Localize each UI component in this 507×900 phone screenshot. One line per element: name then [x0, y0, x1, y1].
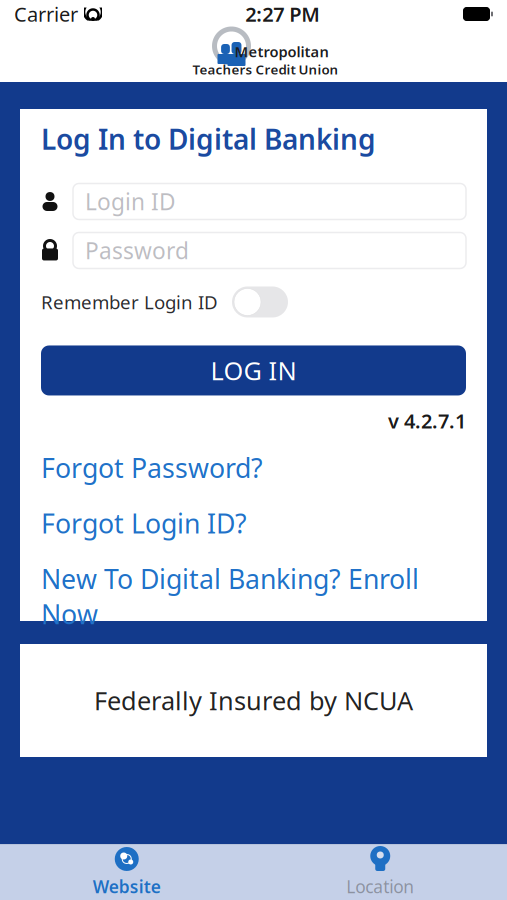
staticText: Forgot Password?	[41, 450, 263, 485]
staticText: Password	[85, 235, 189, 265]
button[interactable]: Forgot Password?	[41, 450, 466, 485]
staticText: Location	[346, 875, 414, 898]
button[interactable]: Location	[253, 844, 507, 900]
staticText: Website	[93, 875, 161, 898]
button[interactable]: New To Digital Banking? Enroll Now	[41, 561, 466, 632]
staticText: 2:27 PM	[245, 1, 320, 27]
staticText: Federally Insured by NCUA	[94, 684, 413, 717]
button[interactable]: Forgot Login ID?	[41, 505, 466, 541]
staticText: v 4.2.7.1	[388, 407, 466, 434]
staticText: Forgot Login ID?	[41, 505, 247, 541]
staticText: Login ID	[85, 186, 176, 216]
staticText: Log In to Digital Banking	[41, 120, 376, 157]
staticText: Metropolitan	[234, 42, 328, 61]
staticText: Remember Login ID	[41, 290, 218, 314]
staticText: Carrier	[14, 1, 78, 27]
staticText: LOG IN	[210, 354, 296, 387]
staticText: Teachers Credit Union	[192, 60, 338, 78]
staticText: New To Digital Banking? Enroll Now	[41, 561, 419, 632]
button[interactable]: Website	[0, 844, 253, 900]
button[interactable]: LOG IN	[41, 345, 466, 395]
